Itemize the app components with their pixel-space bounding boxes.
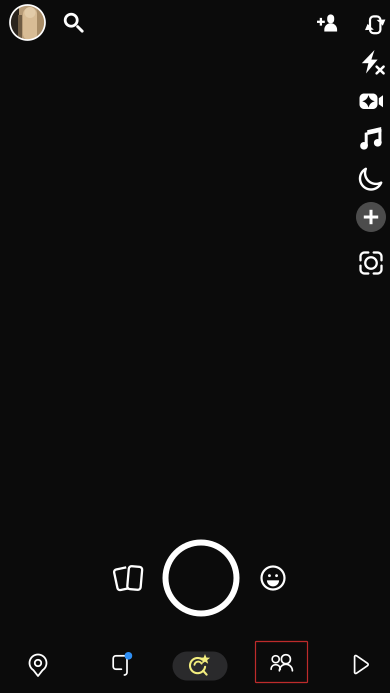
button[interactable]: Scan — [351, 243, 390, 283]
button[interactable]: Chat — [87, 640, 153, 688]
button[interactable]: Capture — [158, 535, 244, 621]
button[interactable]: More Tools — [351, 197, 390, 237]
button[interactable]: Video Effects — [351, 81, 390, 121]
button[interactable]: Camera — [167, 642, 233, 690]
button[interactable]: Lenses — [248, 553, 298, 603]
button[interactable]: Flash Off — [351, 42, 390, 82]
button[interactable]: Flip Camera — [355, 3, 390, 43]
button[interactable]: Spotlight — [328, 640, 390, 688]
button[interactable]: Add Friends — [306, 2, 346, 42]
button[interactable]: Search — [53, 2, 93, 42]
button[interactable]: Memories — [102, 551, 156, 605]
button[interactable]: Friends — [248, 638, 314, 686]
button[interactable]: Profile — [5, 0, 49, 44]
button[interactable]: Night Mode — [351, 158, 390, 198]
button[interactable]: Music — [351, 119, 390, 159]
button[interactable]: Map — [5, 642, 71, 690]
